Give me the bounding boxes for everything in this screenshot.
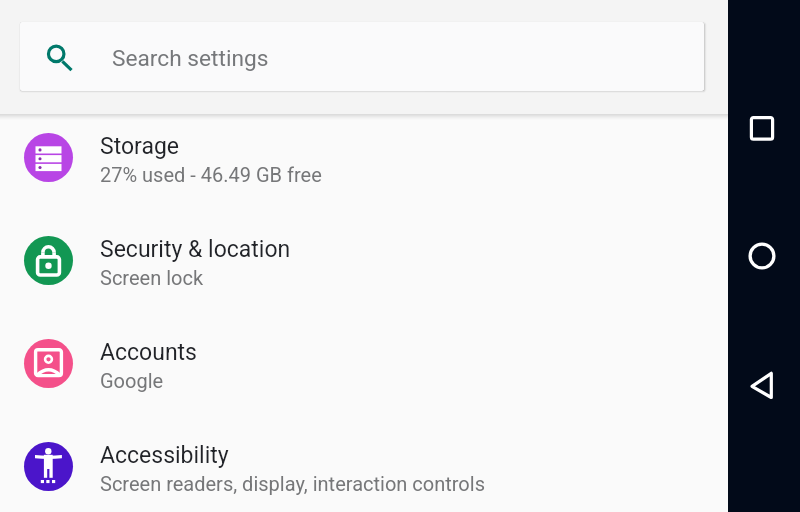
staticText: Security & location: [100, 236, 291, 263]
button[interactable]: Recent apps: [735, 103, 789, 157]
staticText: 27% used - 46.49 GB free: [100, 163, 322, 186]
button[interactable]: Home: [735, 229, 789, 283]
staticText: Screen readers, display, interaction con…: [100, 472, 485, 495]
button[interactable]: Back: [735, 357, 789, 411]
staticText: Screen lock: [100, 266, 204, 289]
staticText: Accessibility: [100, 442, 229, 469]
staticText: Storage: [100, 133, 180, 160]
staticText: Search settings: [112, 45, 269, 72]
button[interactable]: Accessibility: [0, 415, 728, 512]
button[interactable]: Search settings: [20, 22, 704, 91]
staticText: Google: [100, 369, 164, 392]
staticText: Accounts: [100, 339, 197, 366]
button[interactable]: Accounts: [0, 312, 728, 415]
button[interactable]: Storage: [0, 106, 728, 209]
button[interactable]: Security & location: [0, 209, 728, 312]
